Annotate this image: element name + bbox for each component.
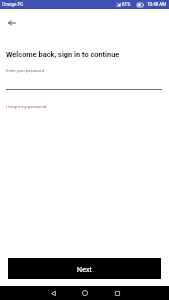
- button[interactable]: Home: [78, 286, 92, 300]
- button[interactable]: Recent apps: [110, 286, 124, 300]
- button[interactable]: I forgot my password: [6, 99, 47, 114]
- button[interactable]: Back: [46, 286, 60, 300]
- staticText: Next: [77, 265, 92, 273]
- staticText: 10:40 AM: [147, 2, 167, 7]
- button[interactable]: Enter your password: [6, 68, 162, 90]
- button[interactable]: Next: [8, 258, 161, 279]
- staticText: I forgot my password: [6, 104, 47, 109]
- staticText: Orange PG: [2, 2, 24, 7]
- staticText: Welcome back, sign in to continue: [6, 50, 120, 59]
- button[interactable]: Navigate up: [2, 13, 22, 33]
- staticText: Enter your password: [6, 68, 45, 73]
- staticText: 61%: [122, 2, 131, 7]
